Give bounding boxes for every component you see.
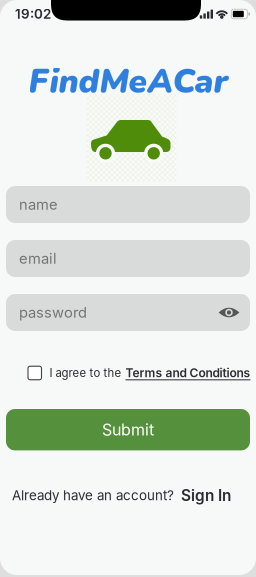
button[interactable]: password [6,294,250,331]
staticText: password [19,304,87,321]
staticText: name [19,196,58,213]
staticText: Already have an account? [12,487,174,503]
button[interactable]: name [6,186,250,223]
staticText: 19:02 [15,6,51,22]
staticText: FindMeACar [28,59,227,104]
staticText: I agree to the [49,366,121,380]
staticText: Terms and Conditions [125,366,250,380]
button[interactable]: I agree to the Terms and Conditions [28,366,41,380]
staticText: email [19,250,57,267]
staticText: Submit [102,420,154,439]
button[interactable]: Submit [6,409,250,450]
staticText: Sign In [181,486,231,505]
button[interactable]: Terms and Conditions [121,366,250,380]
button[interactable]: email [6,240,250,277]
button[interactable]: Sign In [174,486,231,505]
